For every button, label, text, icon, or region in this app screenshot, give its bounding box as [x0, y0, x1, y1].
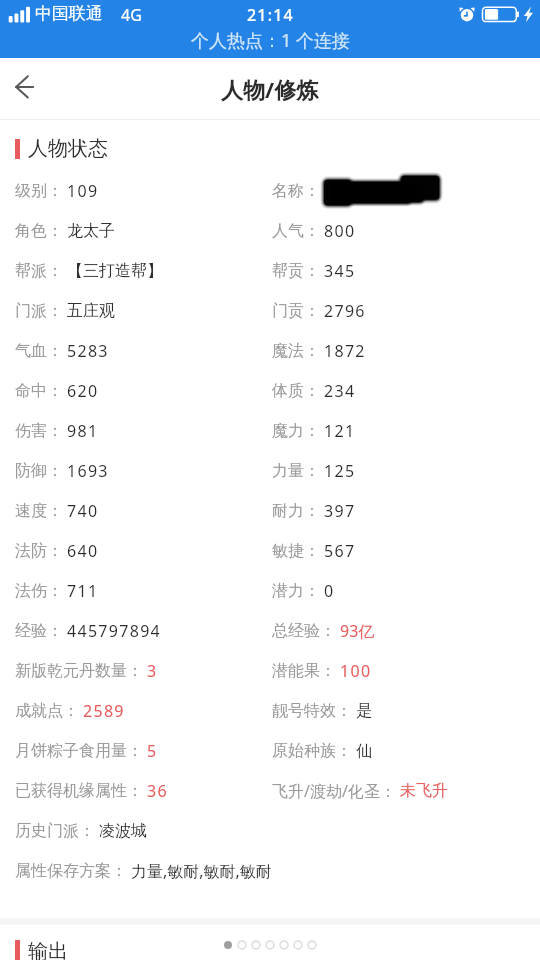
staticText: 魔力：: [272, 421, 320, 441]
staticText: 法伤：: [15, 581, 63, 601]
staticText: 新版乾元丹数量：: [15, 661, 143, 681]
staticText: 567: [324, 540, 356, 562]
staticText: 防御：: [15, 461, 63, 481]
staticText: 力量：: [272, 461, 320, 481]
staticText: 4G: [121, 4, 142, 26]
staticText: 0: [324, 580, 335, 602]
staticText: 气血：: [15, 341, 63, 361]
staticText: 445797894: [67, 620, 162, 642]
staticText: 敏捷：: [272, 541, 320, 561]
staticText: 法防：: [15, 541, 63, 561]
staticText: 仙: [356, 741, 372, 761]
staticText: 2796: [324, 300, 366, 322]
staticText: 234: [324, 380, 356, 402]
staticText: 力量,敏耐,敏耐,敏耐: [131, 860, 272, 882]
staticText: 潜力：: [272, 581, 320, 601]
staticText: 345: [324, 260, 356, 282]
button[interactable]: Back: [0, 58, 50, 120]
staticText: 未飞升: [400, 781, 448, 801]
staticText: 397: [324, 500, 356, 522]
staticText: 五庄观: [67, 301, 115, 321]
staticText: 711: [67, 580, 99, 602]
staticText: 帮贡：: [272, 261, 320, 281]
staticText: 原始种族：: [272, 741, 352, 761]
staticText: 输出: [28, 939, 68, 960]
staticText: 靓号特效：: [272, 701, 352, 721]
staticText: 3: [147, 660, 158, 682]
staticText: 门派：: [15, 301, 63, 321]
staticText: 历史门派：: [15, 821, 95, 841]
staticText: 121: [324, 420, 356, 442]
staticText: 2589: [83, 700, 125, 722]
staticText: 已获得机缘属性：: [15, 781, 143, 801]
staticText: 1872: [324, 340, 366, 362]
staticText: 伤害：: [15, 421, 63, 441]
staticText: 属性保存方案：: [15, 861, 127, 881]
staticText: 800: [324, 220, 356, 242]
staticText: 帮派：: [15, 261, 63, 281]
staticText: 总经验：: [272, 621, 336, 641]
staticText: 是: [356, 701, 372, 721]
staticText: 成就点：: [15, 701, 79, 721]
staticText: 93亿: [340, 620, 375, 642]
staticText: 级别：: [15, 181, 63, 201]
staticText: 109: [67, 180, 99, 202]
staticText: 耐力：: [272, 501, 320, 521]
staticText: 5283: [67, 340, 109, 362]
staticText: 1693: [67, 460, 109, 482]
staticText: 角色：: [15, 221, 63, 241]
staticText: 命中：: [15, 381, 63, 401]
staticText: 体质：: [272, 381, 320, 401]
staticText: 人物/修炼: [221, 74, 319, 104]
staticText: 【三打造帮】: [67, 261, 163, 281]
staticText: 个人热点：1 个连接: [191, 28, 350, 53]
staticText: 人物状态: [28, 136, 108, 161]
staticText: 凌波城: [99, 821, 147, 841]
staticText: 620: [67, 380, 99, 402]
staticText: 21:14: [247, 4, 294, 26]
staticText: 魔法：: [272, 341, 320, 361]
staticText: 月饼粽子食用量：: [15, 741, 143, 761]
staticText: 飞升/渡劫/化圣：: [272, 780, 396, 802]
staticText: 740: [67, 500, 99, 522]
staticText: 经验：: [15, 621, 63, 641]
staticText: 981: [67, 420, 99, 442]
staticText: 龙太子: [67, 221, 115, 241]
staticText: 门贡：: [272, 301, 320, 321]
staticText: 中国联通: [35, 3, 103, 24]
staticText: 36: [147, 780, 168, 802]
staticText: 125: [324, 460, 356, 482]
staticText: 名称：: [272, 181, 320, 201]
staticText: 5: [147, 740, 158, 762]
staticText: 潜能果：: [272, 661, 336, 681]
staticText: 640: [67, 540, 99, 562]
staticText: 100: [340, 660, 372, 682]
staticText: 人气：: [272, 221, 320, 241]
staticText: 速度：: [15, 501, 63, 521]
